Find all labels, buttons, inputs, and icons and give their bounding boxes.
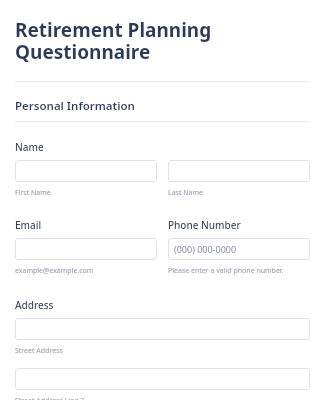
staticText: example@example.com	[15, 266, 94, 276]
staticText: Retirement Planning Questionnaire	[15, 17, 313, 65]
staticText: Street Address	[15, 346, 63, 356]
staticText: Name	[15, 140, 44, 154]
button[interactable]	[15, 160, 157, 182]
staticText: (000) 000-0000	[174, 243, 237, 255]
button[interactable]: (000) 000-0000	[168, 238, 310, 260]
button[interactable]	[168, 160, 310, 182]
button[interactable]	[15, 318, 310, 340]
button[interactable]	[15, 238, 157, 260]
staticText: Email	[15, 218, 42, 232]
staticText: Personal Information	[15, 98, 135, 114]
staticText: Street Address Line 2	[15, 396, 85, 400]
button[interactable]	[15, 368, 310, 390]
staticText: Please enter a valid phone number.	[168, 266, 284, 276]
staticText: First Name	[15, 188, 51, 198]
staticText: Address	[15, 298, 54, 312]
staticText: Phone Number	[168, 218, 241, 232]
staticText: Last Name	[168, 188, 204, 198]
